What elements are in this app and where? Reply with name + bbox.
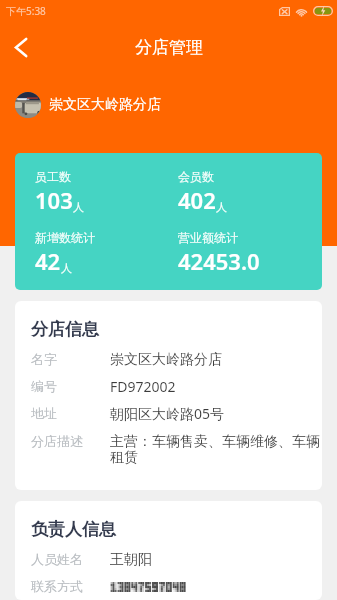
staticText: 营业额统计 <box>178 232 238 245</box>
staticText: 下午5:38 <box>6 4 46 18</box>
staticText: 员工数 <box>35 171 71 184</box>
staticText: 王朝阳 <box>110 552 152 568</box>
staticText: FD972002 <box>110 379 176 395</box>
staticText: 朝阳区大岭路05号 <box>110 406 225 423</box>
staticText: 地址 <box>31 406 110 422</box>
staticText: 402 <box>178 185 216 215</box>
staticText: 人 <box>216 200 227 214</box>
staticText: 42453.0 <box>178 246 260 276</box>
staticText: 人 <box>73 200 84 214</box>
button[interactable]: Back <box>0 26 40 66</box>
staticText: 负责人信息 <box>31 522 116 540</box>
staticText: 新增数统计 <box>35 232 95 245</box>
staticText: 人 <box>61 261 72 275</box>
staticText: 崇文区大岭路分店 <box>49 96 161 114</box>
staticText: 崇文区大岭路分店 <box>110 352 222 368</box>
staticText: 人员姓名 <box>31 552 110 568</box>
staticText: 分店信息 <box>31 322 99 340</box>
staticText: 103 <box>35 185 73 215</box>
staticText: 分店描述 <box>31 434 110 450</box>
staticText: 会员数 <box>178 171 214 184</box>
staticText: 主营：车辆售卖、车辆维修、车辆租赁 <box>110 434 321 466</box>
staticText: 联系方式 <box>31 579 110 595</box>
staticText: 编号 <box>31 379 110 395</box>
staticText: 名字 <box>31 352 110 368</box>
staticText: 42 <box>35 246 61 276</box>
staticText: 分店管理 <box>135 40 203 58</box>
